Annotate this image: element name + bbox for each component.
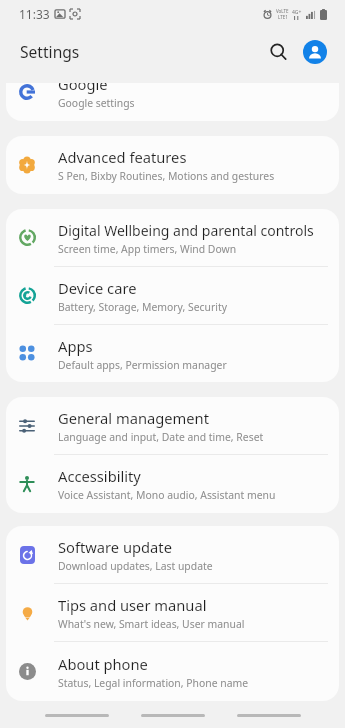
- staticText: Device care: [58, 278, 137, 298]
- staticText: LTE1: [278, 14, 288, 20]
- button[interactable]: Tips and user manual: [6, 584, 339, 642]
- staticText: Settings: [20, 41, 80, 62]
- staticText: 11:33: [19, 6, 50, 22]
- button[interactable]: Digital Wellbeing and parental controls: [6, 209, 339, 267]
- staticText: Screen time, App timers, Wind Down: [58, 242, 237, 256]
- staticText: Battery, Storage, Memory, Security: [58, 300, 227, 314]
- button[interactable]: Search: [269, 37, 299, 67]
- staticText: What's new, Smart ideas, User manual: [58, 617, 245, 631]
- staticText: Accessibility: [58, 466, 141, 486]
- staticText: Language and input, Date and time, Reset: [58, 430, 264, 444]
- staticText: Google: [58, 83, 108, 94]
- staticText: Download updates, Last update: [58, 559, 213, 573]
- button[interactable]: Device care: [6, 267, 339, 325]
- staticText: S Pen, Bixby Routines, Motions and gestu…: [58, 169, 275, 183]
- button[interactable]: General management: [6, 397, 339, 455]
- staticText: Default apps, Permission manager: [58, 358, 227, 372]
- staticText: Status, Legal information, Phone name: [58, 676, 249, 690]
- staticText: VoLTE: [276, 8, 289, 14]
- staticText: About phone: [58, 654, 148, 674]
- button[interactable]: Accessibility: [6, 455, 339, 513]
- staticText: Digital Wellbeing and parental controls: [58, 221, 314, 240]
- staticText: Google settings: [58, 96, 135, 110]
- button[interactable]: Apps: [6, 325, 339, 382]
- staticText: General management: [58, 408, 209, 428]
- staticText: Apps: [58, 336, 93, 356]
- staticText: 4G+: [292, 9, 302, 16]
- staticText: Voice Assistant, Mono audio, Assistant m…: [58, 488, 276, 502]
- button[interactable]: Advanced features: [6, 136, 339, 194]
- staticText: Software update: [58, 537, 172, 557]
- button[interactable]: About phone: [6, 642, 339, 701]
- button[interactable]: Account: [303, 40, 327, 64]
- button[interactable]: Google: [6, 83, 339, 121]
- staticText: Advanced features: [58, 147, 187, 167]
- staticText: Tips and user manual: [58, 595, 207, 615]
- button[interactable]: Software update: [6, 526, 339, 584]
